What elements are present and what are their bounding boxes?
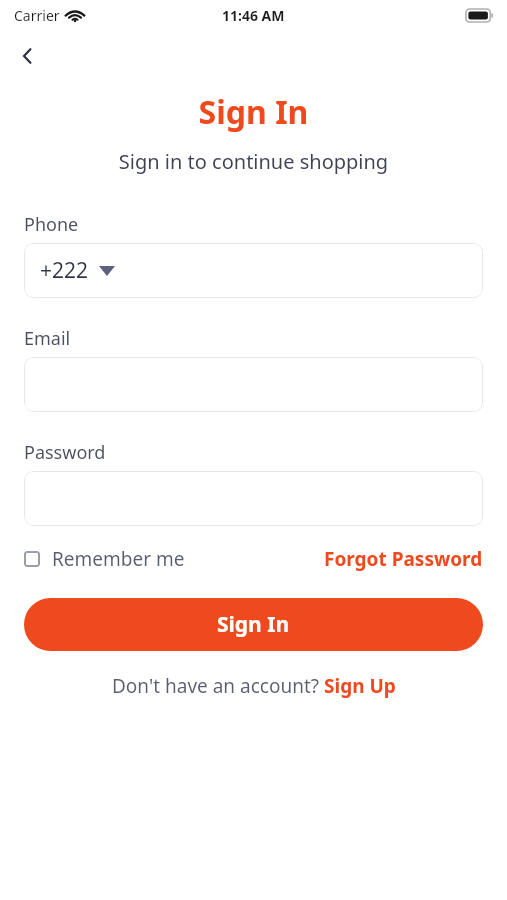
staticText: Password xyxy=(24,440,106,465)
button[interactable]: Back xyxy=(8,36,48,76)
staticText: Email xyxy=(24,326,71,351)
staticText: Sign Up xyxy=(324,673,396,699)
staticText: Sign In xyxy=(0,90,507,134)
staticText: Forgot Password xyxy=(324,546,483,572)
staticText: Remember me xyxy=(52,546,185,572)
staticText: Phone xyxy=(24,212,79,237)
staticText: Sign In xyxy=(217,610,290,639)
staticText: 11:46 AM xyxy=(222,6,285,25)
button[interactable]: +222 xyxy=(24,243,483,298)
button[interactable]: Email input xyxy=(24,357,483,412)
staticText: Sign in to continue shopping xyxy=(0,148,507,175)
staticText: +222 xyxy=(40,256,89,285)
button[interactable]: Password input xyxy=(24,471,483,526)
button[interactable]: Forgot Password xyxy=(324,542,483,576)
button[interactable]: Remember me xyxy=(24,542,185,576)
button[interactable]: Sign In xyxy=(24,598,483,651)
button[interactable]: Sign Up xyxy=(324,673,396,699)
staticText: Carrier xyxy=(14,6,60,25)
staticText: Don't have an account? xyxy=(112,673,324,699)
